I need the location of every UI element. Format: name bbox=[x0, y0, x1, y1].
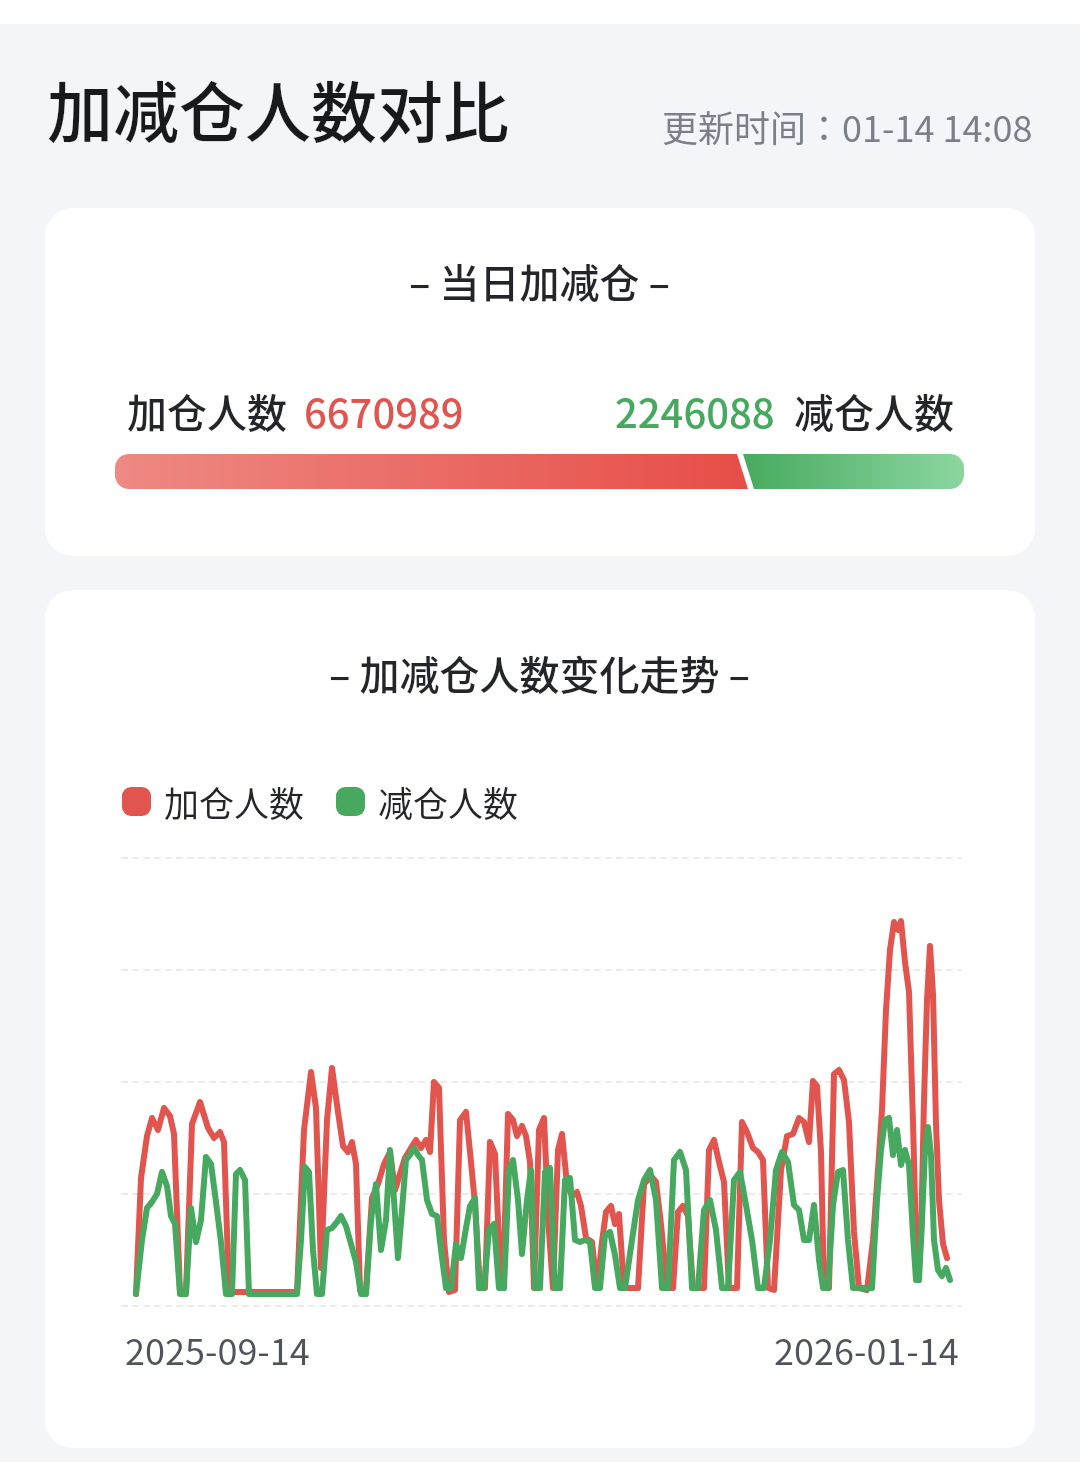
staticText: 2246088 bbox=[615, 382, 775, 440]
staticText: 6670989 bbox=[304, 382, 464, 440]
staticText: – 当日加减仓 – bbox=[409, 252, 671, 310]
staticText: 更新时间：01-14 14:08 bbox=[662, 100, 1033, 152]
staticText: 加仓人数 bbox=[127, 382, 287, 440]
staticText: – 加减仓人数变化走势 – bbox=[329, 644, 751, 702]
staticText: 减仓人数 bbox=[378, 776, 519, 827]
button[interactable]: – 加减仓人数变化走势 – bbox=[45, 590, 1035, 1448]
button[interactable]: – 当日加减仓 – bbox=[45, 208, 1035, 556]
staticText: 减仓人数 bbox=[794, 382, 954, 440]
staticText: 加减仓人数对比 bbox=[47, 60, 509, 156]
staticText: 2025-09-14 bbox=[125, 1323, 310, 1375]
staticText: 加仓人数 bbox=[164, 776, 305, 827]
staticText: 2026-01-14 bbox=[774, 1323, 959, 1375]
